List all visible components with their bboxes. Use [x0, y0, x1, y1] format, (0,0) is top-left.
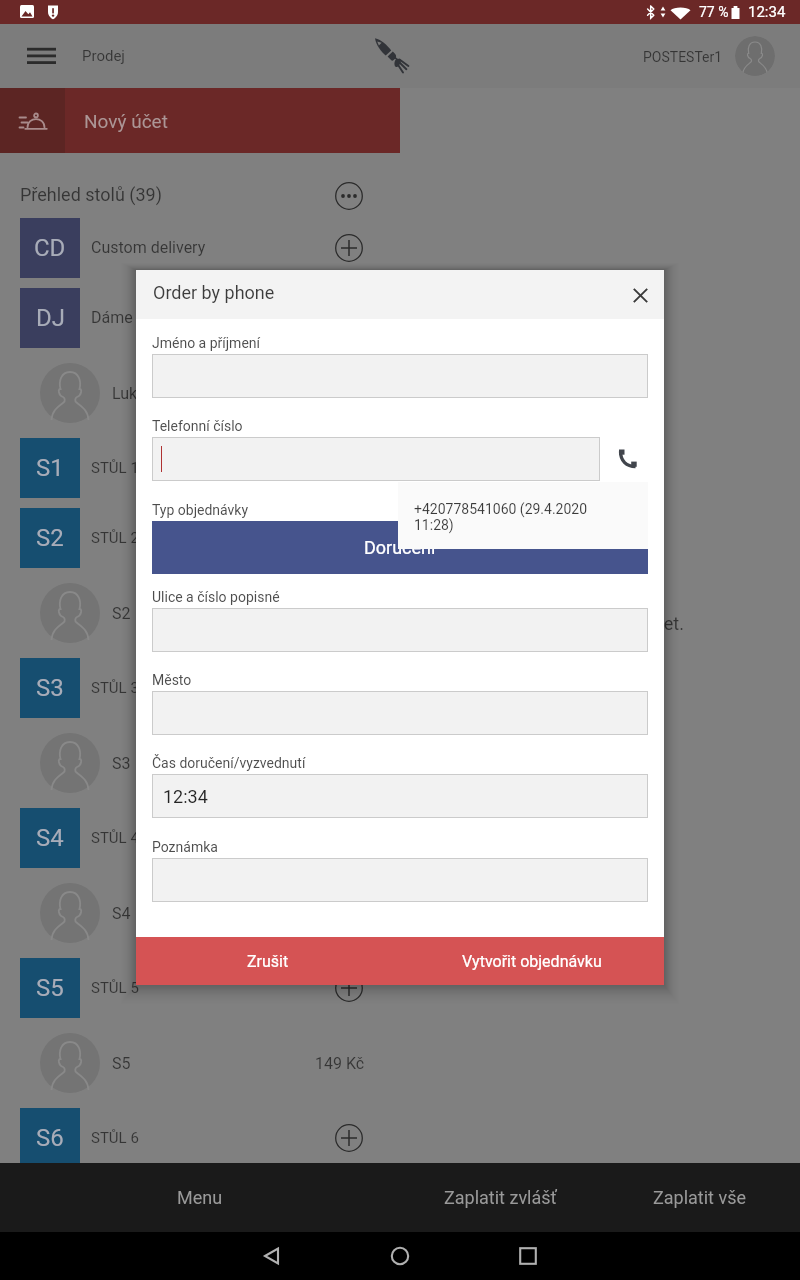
- staticText: 77 %: [699, 4, 729, 20]
- staticText: Ulice a číslo popisné: [152, 589, 280, 605]
- staticText: 149 Kč: [315, 1054, 365, 1073]
- button[interactable]: DJ: [0, 288, 400, 348]
- staticText: STŮL 6: [91, 1129, 139, 1147]
- button[interactable]: Zaplatit vše: [600, 1163, 800, 1232]
- button[interactable]: Close: [620, 275, 660, 315]
- button[interactable]: Add order: [329, 448, 369, 488]
- button[interactable]: S3: [0, 733, 400, 793]
- staticText: Vyberte stůl pro nový účet.: [472, 613, 684, 634]
- staticText: Zrušit: [247, 952, 289, 971]
- button[interactable]: Add order: [329, 228, 369, 268]
- button[interactable]: Home: [380, 1236, 420, 1276]
- button[interactable]: [152, 858, 648, 902]
- staticText: S2: [112, 604, 131, 623]
- button[interactable]: More options: [329, 176, 369, 216]
- staticText: Prodej: [82, 47, 125, 65]
- staticText: DJ: [36, 304, 65, 332]
- button[interactable]: S1: [0, 438, 400, 498]
- button[interactable]: [152, 354, 648, 398]
- staticText: STŮL 3: [91, 679, 139, 697]
- staticText: Doručení: [364, 537, 436, 558]
- staticText: S5: [112, 1054, 131, 1073]
- staticText: Telefonní číslo: [152, 418, 243, 434]
- staticText: STŮL 5: [91, 979, 139, 997]
- button[interactable]: [152, 437, 600, 481]
- staticText: Zaplatit zvlášť: [444, 1187, 557, 1208]
- button[interactable]: [152, 691, 648, 735]
- staticText: Město: [152, 672, 192, 688]
- button[interactable]: CD: [0, 218, 400, 278]
- button[interactable]: Recent apps: [508, 1236, 548, 1276]
- staticText: S5: [36, 974, 64, 1002]
- staticText: Přehled stolů (39): [20, 184, 162, 205]
- staticText: 12:34: [748, 3, 786, 21]
- button[interactable]: S4: [0, 808, 400, 868]
- button[interactable]: Open navigation menu: [17, 32, 65, 80]
- button[interactable]: Menu: [0, 1163, 400, 1232]
- staticText: S4: [36, 824, 64, 852]
- staticText: STŮL 1: [91, 459, 139, 477]
- button[interactable]: Add order: [329, 668, 369, 708]
- staticText: STŮL 4: [91, 829, 139, 847]
- button[interactable]: Restaurant: [370, 34, 414, 78]
- button[interactable]: S2: [0, 583, 400, 643]
- button[interactable]: [152, 608, 648, 652]
- staticText: Custom delivery: [91, 238, 206, 257]
- staticText: Order by phone: [153, 282, 275, 303]
- staticText: CD: [34, 234, 66, 262]
- staticText: Menu: [177, 1187, 223, 1208]
- button[interactable]: S4: [0, 883, 400, 943]
- button[interactable]: New account: [0, 88, 65, 153]
- staticText: Jméno a příjmení: [152, 335, 261, 351]
- staticText: S6: [36, 1124, 64, 1152]
- button[interactable]: Zrušit: [136, 937, 400, 985]
- button[interactable]: Add order: [329, 968, 369, 1008]
- staticText: 12:34: [163, 786, 208, 807]
- button[interactable]: S2: [0, 508, 400, 568]
- button[interactable]: Doručení: [152, 521, 648, 574]
- staticText: POSTESTer1: [643, 49, 723, 65]
- staticText: Nový účet: [84, 110, 168, 132]
- button[interactable]: Lukáš Novák: [0, 363, 400, 423]
- staticText: STŮL 2: [91, 529, 139, 547]
- button[interactable]: Add order: [329, 1118, 369, 1158]
- button[interactable]: Add order: [329, 298, 369, 338]
- button[interactable]: New account: [0, 88, 400, 153]
- staticText: Lukáš Novák: [112, 384, 203, 403]
- button[interactable]: Vytvořit objednávku: [400, 937, 664, 985]
- staticText: Poznámka: [152, 839, 218, 855]
- button[interactable]: S5: [0, 958, 400, 1018]
- staticText: +420778541060 (29.4.2020 11:28): [414, 501, 594, 533]
- button[interactable]: 12:34: [152, 774, 648, 818]
- button[interactable]: Account: [735, 36, 775, 76]
- button[interactable]: +420778541060 (29.4.2020 11:28): [398, 482, 648, 549]
- button[interactable]: Back: [252, 1236, 292, 1276]
- staticText: S3: [36, 674, 64, 702]
- staticText: Zaplatit vše: [653, 1187, 747, 1208]
- staticText: S3: [112, 754, 131, 773]
- button[interactable]: Add order: [329, 518, 369, 558]
- staticText: S4: [112, 904, 131, 923]
- button[interactable]: S6: [0, 1108, 400, 1168]
- button[interactable]: Zaplatit zvlášť: [400, 1163, 600, 1232]
- staticText: Čas doručení/vyzvednutí: [152, 755, 306, 771]
- staticText: Typ objednávky: [152, 502, 249, 518]
- button[interactable]: S5: [0, 1033, 400, 1093]
- button[interactable]: S3: [0, 658, 400, 718]
- staticText: Vytvořit objednávku: [462, 952, 602, 971]
- staticText: S2: [36, 524, 64, 552]
- staticText: S1: [36, 454, 64, 482]
- button[interactable]: Call contact: [606, 437, 650, 481]
- staticText: Dáme jídlo: [91, 308, 167, 327]
